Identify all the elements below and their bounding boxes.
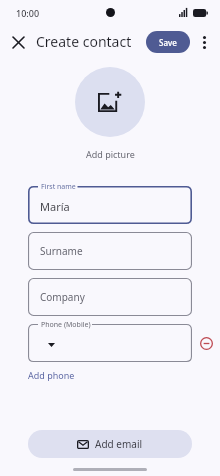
- staticText: Surname: [40, 244, 83, 258]
- staticText: Create contact: [36, 32, 132, 51]
- button[interactable]: Phone (Mobile): [28, 324, 192, 362]
- staticText: 10:00: [16, 7, 40, 19]
- staticText: Add phone: [28, 369, 75, 381]
- staticText: Phone (Mobile): [41, 320, 91, 330]
- staticText: María: [40, 199, 70, 214]
- button[interactable]: Add email: [28, 430, 192, 458]
- button[interactable]: Close: [5, 29, 31, 55]
- staticText: Company: [40, 290, 85, 304]
- button[interactable]: Company: [28, 278, 192, 316]
- staticText: First name: [41, 182, 76, 192]
- button[interactable]: Add picture: [75, 67, 145, 137]
- button[interactable]: Remove phone: [192, 324, 220, 362]
- staticText: Save: [159, 37, 177, 48]
- button[interactable]: Save: [146, 31, 190, 53]
- staticText: Add picture: [86, 148, 135, 160]
- staticText: Add email: [95, 437, 143, 451]
- button[interactable]: Surname: [28, 232, 192, 270]
- button[interactable]: Add phone: [28, 367, 75, 383]
- button[interactable]: First name: [28, 186, 192, 224]
- button[interactable]: More options: [192, 30, 216, 54]
